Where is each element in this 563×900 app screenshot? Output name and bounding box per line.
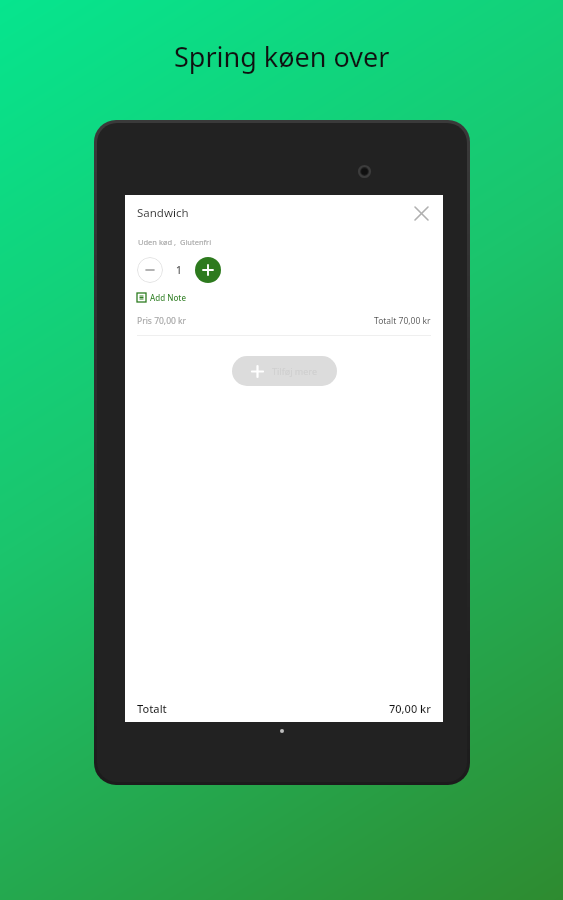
button[interactable]: Decrease quantity — [137, 257, 163, 283]
staticText: Add Note — [150, 292, 186, 303]
button[interactable]: Close — [409, 201, 433, 225]
button[interactable]: Add Note — [137, 292, 186, 303]
button[interactable]: Tilføj mere — [232, 356, 337, 386]
button[interactable]: Increase quantity — [195, 257, 221, 283]
staticText: 70,00 kr — [389, 701, 431, 716]
staticText: Uden kød , Glutenfri — [138, 237, 212, 247]
staticText: 1 — [176, 263, 182, 277]
staticText: Totalt 70,00 kr — [374, 315, 431, 327]
staticText: Totalt — [137, 701, 167, 716]
staticText: Tilføj mere — [272, 365, 317, 377]
staticText: Spring køen over — [174, 38, 390, 75]
staticText: Pris 70,00 kr — [137, 315, 187, 327]
staticText: Sandwich — [137, 205, 189, 221]
